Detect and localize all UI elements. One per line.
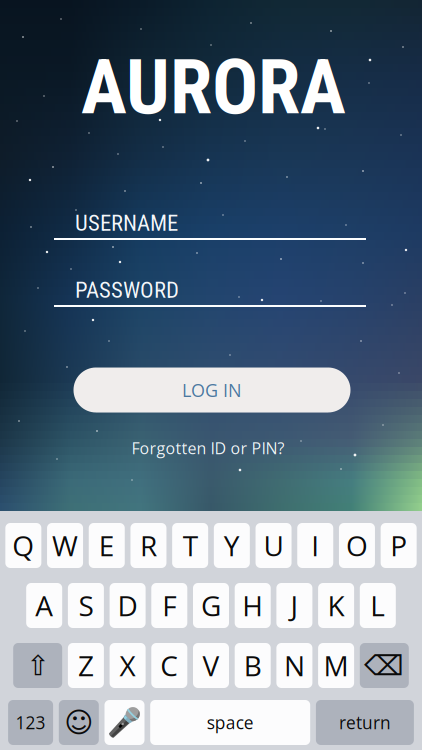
button[interactable]: E <box>89 523 125 568</box>
button[interactable]: W <box>47 523 83 568</box>
staticText: G <box>201 586 221 624</box>
button[interactable]: PASSWORD <box>0 0 422 511</box>
button[interactable]: L <box>360 583 396 628</box>
button[interactable]: A <box>26 583 62 628</box>
staticText: USERNAME <box>75 210 178 236</box>
staticText: PASSWORD <box>75 277 179 303</box>
staticText: U <box>263 526 283 564</box>
staticText: return <box>339 711 391 734</box>
staticText: J <box>290 586 298 624</box>
button[interactable]: P <box>381 523 417 568</box>
staticText: Z <box>78 646 94 684</box>
button[interactable]: F <box>151 583 187 628</box>
staticText: I <box>311 526 319 564</box>
button[interactable]: B <box>235 643 271 688</box>
button[interactable]: D <box>110 583 146 628</box>
staticText: LOG IN <box>182 378 242 402</box>
staticText: L <box>370 586 385 624</box>
button[interactable]: ⇧ <box>13 643 62 688</box>
staticText: space <box>207 711 254 734</box>
staticText: C <box>160 646 178 684</box>
button[interactable]: R <box>130 523 166 568</box>
button[interactable]: USERNAME <box>0 0 422 511</box>
button[interactable]: C <box>151 643 187 688</box>
staticText: B <box>244 646 262 684</box>
staticText: ⌫ <box>364 649 404 682</box>
staticText: T <box>183 526 198 564</box>
button[interactable]: K <box>318 583 354 628</box>
staticText: Q <box>12 526 34 564</box>
button[interactable]: N <box>276 643 312 688</box>
button[interactable]: ⌫ <box>360 643 409 688</box>
button[interactable]: V <box>193 643 229 688</box>
staticText: Forgotten ID or PIN? <box>131 437 284 459</box>
staticText: 123 <box>16 711 46 734</box>
button[interactable]: return <box>316 700 414 745</box>
staticText: R <box>140 526 157 564</box>
staticText: P <box>390 526 407 564</box>
staticText: V <box>202 646 219 684</box>
button[interactable]: G <box>193 583 229 628</box>
staticText: O <box>346 526 368 564</box>
button[interactable]: ☺ <box>59 700 99 745</box>
button[interactable]: space <box>150 700 310 745</box>
staticText: 🎤 <box>107 706 142 739</box>
staticText: ⇧ <box>26 649 49 682</box>
staticText: N <box>284 646 305 684</box>
staticText: D <box>118 586 138 624</box>
button[interactable]: O <box>339 523 375 568</box>
button[interactable]: Z <box>68 643 104 688</box>
button[interactable]: J <box>276 583 312 628</box>
staticText: ☺ <box>64 706 93 739</box>
staticText: A <box>35 586 53 624</box>
staticText: K <box>328 586 345 624</box>
staticText: S <box>78 586 93 624</box>
button[interactable]: Y <box>214 523 250 568</box>
button[interactable]: X <box>110 643 146 688</box>
button[interactable]: 🎤 <box>104 700 144 745</box>
button[interactable]: M <box>318 643 354 688</box>
staticText: AURORA <box>81 42 346 132</box>
button[interactable]: Forgotten ID or PIN? <box>108 435 308 461</box>
staticText: X <box>120 646 136 684</box>
staticText: F <box>162 586 176 624</box>
staticText: W <box>52 526 78 564</box>
button[interactable]: LOG IN <box>73 367 350 412</box>
button[interactable]: I <box>297 523 333 568</box>
button[interactable]: T <box>172 523 208 568</box>
staticText: M <box>324 646 349 684</box>
staticText: E <box>99 526 115 564</box>
button[interactable]: U <box>255 523 291 568</box>
button[interactable]: S <box>68 583 104 628</box>
button[interactable]: 123 <box>8 700 53 745</box>
button[interactable]: H <box>235 583 271 628</box>
staticText: Y <box>224 526 240 564</box>
staticText: H <box>242 586 263 624</box>
button[interactable]: Q <box>5 523 41 568</box>
